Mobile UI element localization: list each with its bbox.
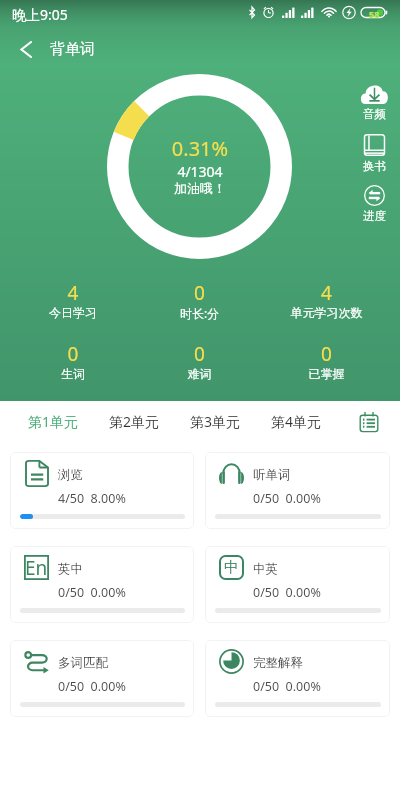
button[interactable]: Back [8,33,44,65]
staticText: 晚上9:05 [12,5,68,24]
button[interactable]: En [10,546,194,623]
staticText: 今日学习 [10,305,136,320]
staticText: 音频 [363,107,386,121]
staticText: 听单词 [253,467,291,483]
button[interactable]: 4 [10,280,136,325]
staticText: 时长:分 [136,305,263,321]
staticText: 加油哦！ [0,180,400,196]
staticText: 背单词 [50,40,95,59]
staticText: 第2单元 [109,412,160,431]
staticText: 第4单元 [271,412,322,431]
button[interactable]: 换书 [357,134,392,173]
staticText: 0 [136,341,263,367]
button[interactable]: 完整解释 [205,640,390,717]
staticText: 58 [369,8,380,20]
staticText: 0 [136,280,263,306]
staticText: 0/50 0.00% [58,584,126,601]
staticText: 浏览 [58,467,83,483]
staticText: 4/50 8.00% [58,490,126,507]
button[interactable]: 0 [136,341,263,386]
staticText: 4/1304 [0,162,400,181]
staticText: 0 [10,341,136,367]
staticText: 第1单元 [28,412,79,431]
button[interactable]: Word list [349,405,389,439]
button[interactable]: 多词匹配 [10,640,194,717]
staticText: 进度 [363,209,386,223]
button[interactable]: 进度 [357,185,392,223]
staticText: 0/50 0.00% [253,584,321,601]
staticText: 4 [10,280,136,306]
button[interactable]: 0 [136,280,263,325]
button[interactable]: 中 [205,546,390,623]
staticText: 第3单元 [190,412,241,431]
staticText: 难词 [136,366,263,381]
button[interactable]: 0 [263,341,390,386]
staticText: En [25,555,48,580]
button[interactable]: 第1单元 [27,406,80,441]
button[interactable]: 4 [263,280,390,325]
staticText: 单元学习次数 [263,305,390,320]
staticText: 完整解释 [253,655,303,671]
staticText: 0/50 0.00% [253,678,321,695]
button[interactable]: 听单词 [205,452,390,529]
staticText: 0/50 0.00% [253,490,321,507]
staticText: 0 [263,341,390,367]
button[interactable]: 浏览 [10,452,194,529]
staticText: 中 [224,558,239,577]
staticText: 中英 [253,561,278,577]
button[interactable]: 0 [10,341,136,386]
staticText: 0.31% [0,135,400,162]
button[interactable]: 第2单元 [108,406,161,441]
staticText: 换书 [363,159,386,173]
button[interactable]: 第4单元 [270,406,323,441]
staticText: 0/50 0.00% [58,678,126,695]
staticText: 多词匹配 [58,655,108,671]
button[interactable]: 第3单元 [189,406,242,441]
staticText: 4 [263,280,390,306]
button[interactable]: 音频 [357,83,392,121]
staticText: 生词 [10,366,136,381]
staticText: 已掌握 [263,366,390,381]
staticText: 英中 [58,561,83,577]
